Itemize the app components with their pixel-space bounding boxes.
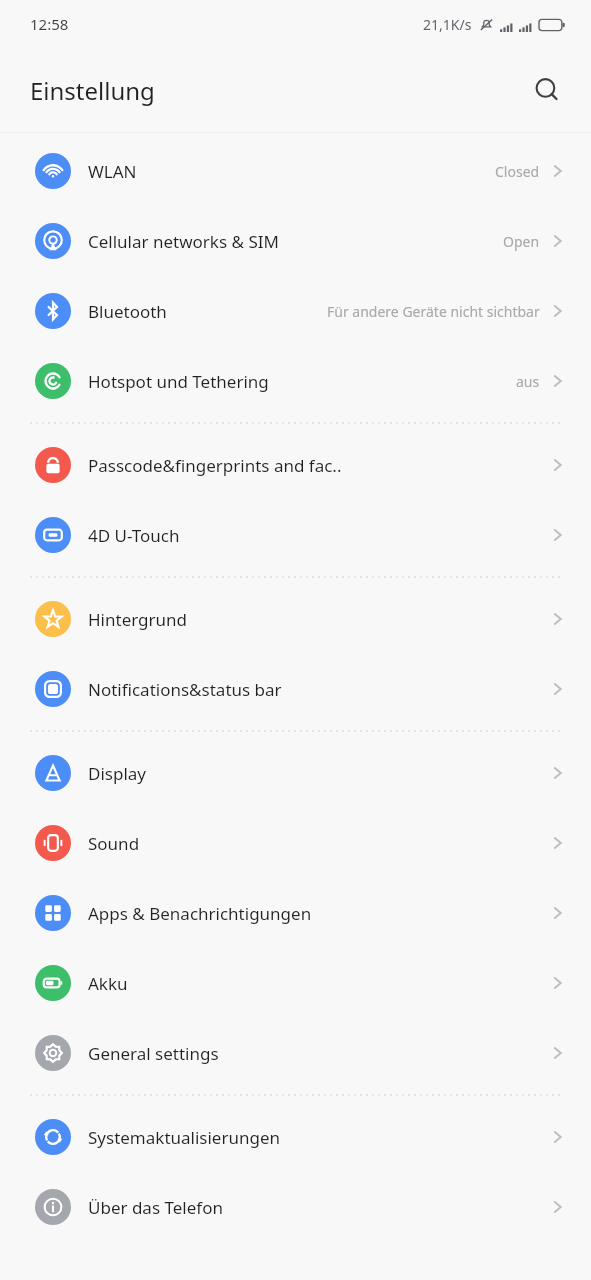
staticText: 4D U-Touch [88,524,180,547]
staticText: Für andere Geräte nicht sichtbar [327,302,540,321]
staticText: Sound [88,832,140,855]
staticText: Apps & Benachrichtigungen [88,902,312,925]
staticText: Notifications&status bar [88,678,282,701]
staticText: Einstellung [30,74,155,107]
button[interactable]: Sound [0,808,591,878]
staticText: Bluetooth [88,300,167,323]
staticText: General settings [88,1042,219,1065]
button[interactable]: Systemaktualisierungen [0,1102,591,1172]
staticText: Hotspot und Tethering [88,370,269,393]
staticText: Closed [495,162,540,181]
staticText: 21,1K/s [423,15,472,34]
button[interactable]: Bluetooth [0,276,591,346]
staticText: Display [88,762,146,785]
staticText: Über das Telefon [88,1196,223,1219]
staticText: WLAN [88,160,137,183]
button[interactable]: Apps & Benachrichtigungen [0,878,591,948]
staticText: Akku [88,972,128,995]
staticText: Open [503,232,540,251]
button[interactable]: Passcode&fingerprints and fac.. [0,430,591,500]
button[interactable]: Cellular networks & SIM [0,206,591,276]
staticText: 12:58 [30,14,69,34]
button[interactable]: Akku [0,948,591,1018]
button[interactable]: WLAN [0,136,591,206]
staticText: aus [516,372,540,391]
button[interactable]: Hintergrund [0,584,591,654]
staticText: Systemaktualisierungen [88,1126,281,1149]
button[interactable]: Display [0,738,591,808]
staticText: Passcode&fingerprints and fac.. [88,454,342,477]
staticText: Hintergrund [88,608,188,631]
button[interactable]: Hotspot und Tethering [0,346,591,416]
staticText: Cellular networks & SIM [88,230,279,253]
button[interactable]: Notifications&status bar [0,654,591,724]
button[interactable]: Über das Telefon [0,1172,591,1242]
button[interactable]: 4D U-Touch [0,500,591,570]
button[interactable]: Search [525,68,569,112]
button[interactable]: General settings [0,1018,591,1088]
